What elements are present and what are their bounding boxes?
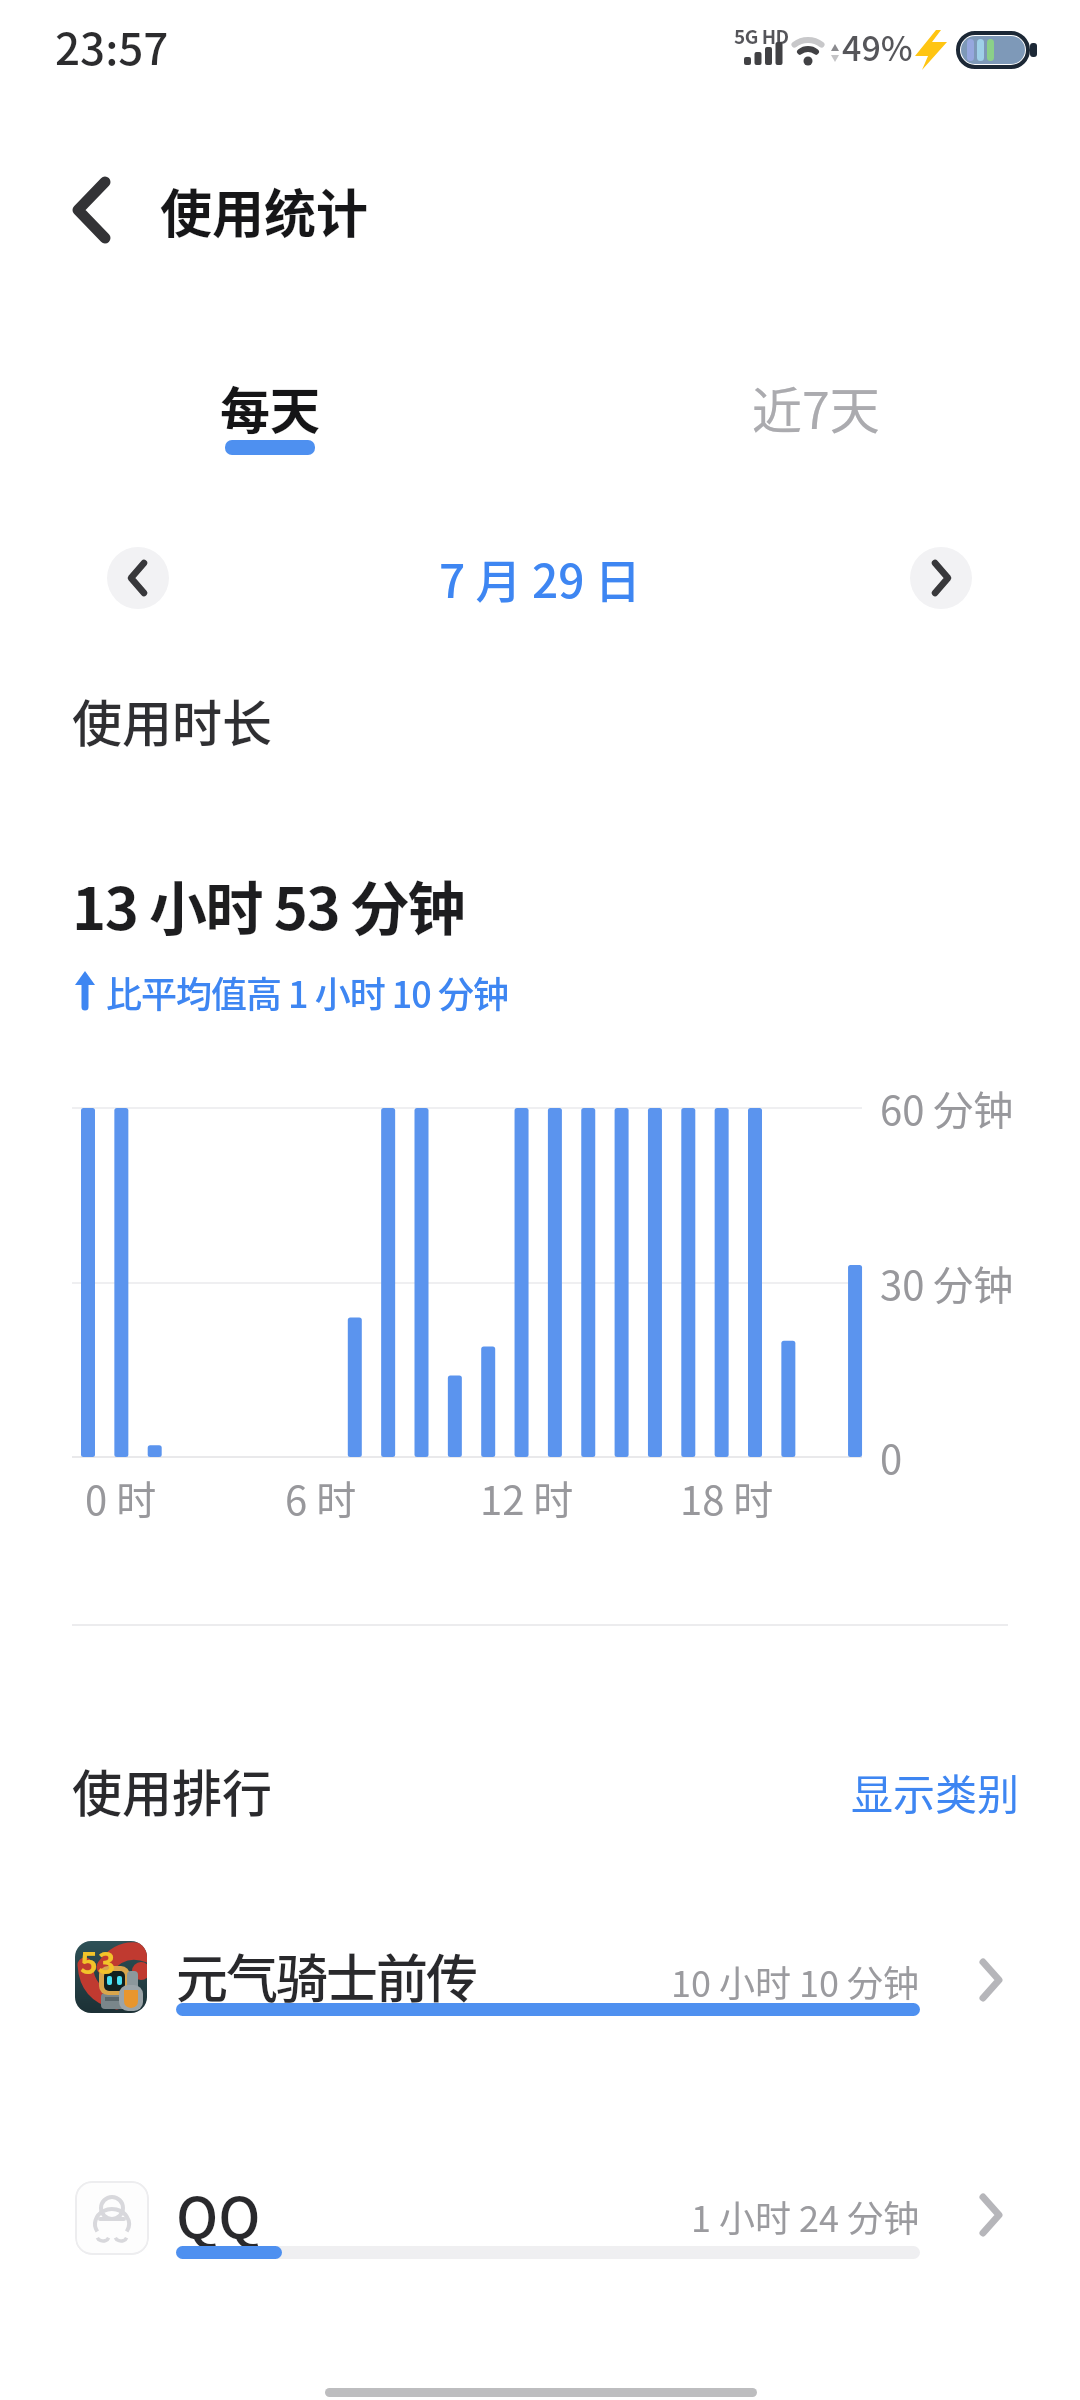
button[interactable] — [55, 175, 125, 245]
staticText: 13 小时 53 分钟 — [72, 863, 464, 947]
button[interactable]: 每天 — [0, 360, 540, 470]
staticText: 10 小时 10 分钟 — [671, 1955, 920, 2007]
staticText: 12 时 — [480, 1469, 574, 1527]
staticText: 23:57 — [55, 14, 169, 78]
staticText: 7 月 29 日 — [439, 545, 641, 611]
staticText: 6 时 — [285, 1469, 357, 1527]
button[interactable]: QQ — [60, 2140, 1008, 2305]
staticText: 元气骑士前传 — [176, 1938, 477, 2013]
staticText: 0 — [880, 1428, 903, 1486]
staticText: 49% — [842, 22, 913, 71]
staticText: 53 — [80, 1941, 116, 1982]
button[interactable] — [107, 547, 169, 609]
staticText: 0 时 — [85, 1469, 157, 1527]
button[interactable]: 显示类别 — [840, 1758, 1020, 1824]
staticText: 使用排行 — [72, 1754, 272, 1826]
button[interactable] — [910, 547, 972, 609]
button[interactable]: 近7天 — [540, 360, 1080, 470]
staticText: 比平均值高 1 小时 10 分钟 — [106, 966, 508, 1018]
staticText: 使用统计 — [160, 173, 369, 248]
staticText: 每天 — [220, 371, 320, 443]
staticText: 5G HD — [734, 22, 789, 50]
staticText: 18 时 — [680, 1469, 774, 1527]
staticText: 1 小时 24 分钟 — [691, 2190, 920, 2242]
staticText: 使用时长 — [72, 684, 272, 756]
staticText: 近7天 — [752, 371, 880, 443]
button[interactable]: 53 — [60, 1900, 1008, 2065]
staticText: 30 分钟 — [880, 1254, 1014, 1312]
staticText: QQ — [176, 2173, 261, 2254]
staticText: 60 分钟 — [880, 1079, 1014, 1137]
staticText: 显示类别 — [851, 1761, 1020, 1822]
